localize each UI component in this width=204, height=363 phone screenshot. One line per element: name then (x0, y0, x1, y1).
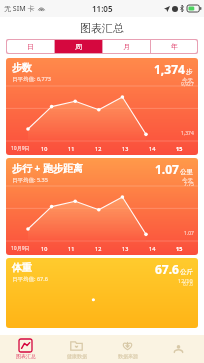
staticText: 10月9日 (11, 145, 30, 152)
staticText: 13 (122, 145, 129, 152)
button[interactable]: 步行 + 跑步距离 (6, 158, 198, 255)
button[interactable]: 月 (103, 39, 150, 54)
staticText: 1,374 (154, 61, 185, 77)
staticText: 14 (149, 245, 156, 252)
staticText: 公里 (180, 168, 193, 176)
button[interactable]: 更多 (153, 335, 204, 363)
staticText: 10 (41, 245, 48, 252)
staticText: 11 (68, 145, 75, 152)
button[interactable]: 日 (6, 39, 54, 54)
staticText: 日 (27, 42, 34, 51)
staticText: 年 (171, 42, 178, 51)
staticText: 10月9日 (11, 245, 30, 252)
staticText: 67.6 (155, 261, 179, 277)
staticText: 数据来源 (118, 353, 138, 359)
staticText: 步 (186, 68, 193, 76)
staticText: 12 (95, 145, 102, 152)
button[interactable]: 健康数据 (51, 335, 102, 363)
staticText: 步数 (12, 61, 32, 74)
staticText: 今天 (182, 177, 193, 184)
staticText: 步行 + 跑步距离 (12, 161, 83, 175)
staticText: 11 (68, 245, 75, 252)
staticText: 14 (149, 145, 156, 152)
button[interactable]: 数据来源 (102, 335, 153, 363)
staticText: 公斤 (180, 268, 193, 276)
staticText: 健康数据 (67, 353, 87, 359)
staticText: 12/10 (178, 277, 193, 284)
staticText: 10 (41, 145, 48, 152)
staticText: 日平均值: 6,773 (12, 75, 51, 83)
staticText: 11:05 (92, 3, 113, 14)
staticText: 67.6 (183, 281, 193, 288)
button[interactable]: 图表汇总 (0, 335, 51, 363)
staticText: 图表汇总 (16, 353, 36, 359)
staticText: 图表汇总 (80, 21, 124, 35)
staticText: 1.07 (184, 230, 194, 237)
staticText: 月 (123, 42, 130, 51)
staticText: 12 (95, 245, 102, 252)
staticText: 15 (176, 245, 183, 252)
staticText: 15 (176, 145, 183, 152)
staticText: 1,374 (181, 130, 194, 137)
staticText: 1.07 (155, 161, 179, 177)
staticText: 7.75 (184, 181, 194, 188)
button[interactable]: 体重 (6, 258, 198, 328)
button[interactable]: 年 (151, 39, 198, 54)
staticText: 体重 (12, 261, 32, 274)
staticText: 周 (75, 42, 82, 51)
staticText: 日平均值: 67.6 (12, 275, 48, 283)
button[interactable]: 周 (55, 39, 102, 54)
button[interactable]: 步数 (6, 58, 198, 155)
staticText: 9,927 (181, 81, 194, 88)
staticText: 今天 (182, 77, 193, 84)
staticText: 13 (122, 245, 129, 252)
staticText: 无 SIM 卡 (4, 4, 35, 14)
staticText: 日平均值: 5.35 (12, 176, 48, 184)
